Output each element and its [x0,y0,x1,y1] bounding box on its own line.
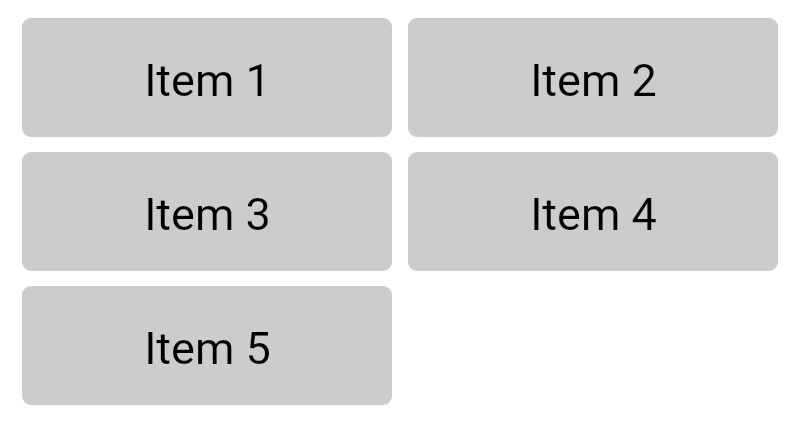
button[interactable]: Item 2 [408,18,778,137]
button[interactable]: Item 1 [22,18,392,137]
staticText: Item 1 [144,54,271,107]
button[interactable]: Item 4 [408,152,778,271]
staticText: Item 2 [530,54,657,107]
staticText: Item 4 [530,188,657,241]
button[interactable]: Item 3 [22,152,392,271]
staticText: Item 3 [144,188,271,241]
staticText: Item 5 [144,322,271,375]
button[interactable]: Item 5 [22,286,392,405]
